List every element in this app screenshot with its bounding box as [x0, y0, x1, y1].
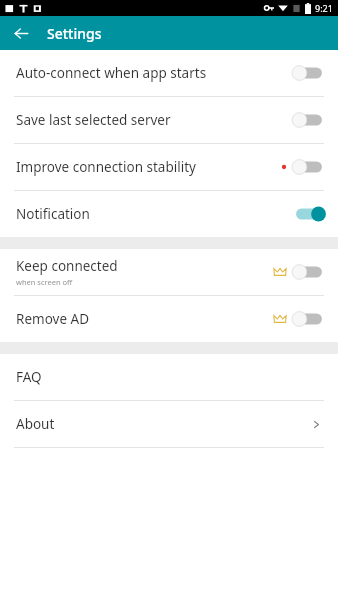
staticText: FAQ: [16, 368, 322, 386]
button[interactable]: Improve connection stability: [0, 144, 338, 190]
button[interactable]: Notification: [0, 191, 338, 237]
staticText: Notification: [16, 205, 90, 223]
button[interactable]: Save last selected server: [0, 97, 338, 143]
button[interactable]: Back: [8, 20, 34, 46]
button[interactable]: Auto-connect when app starts: [0, 50, 338, 96]
staticText: when screen off: [16, 277, 73, 287]
staticText: 9:21: [315, 2, 333, 14]
staticText: Save last selected server: [16, 111, 171, 129]
staticText: About: [16, 415, 311, 433]
button[interactable]: Keep connected: [0, 249, 338, 295]
staticText: Remove AD: [16, 310, 89, 328]
staticText: Keep connected: [16, 257, 118, 275]
button[interactable]: Remove AD: [0, 296, 338, 342]
staticText: Auto-connect when app starts: [16, 64, 207, 82]
staticText: Settings: [47, 24, 102, 43]
button[interactable]: FAQ: [0, 354, 338, 400]
staticText: Improve connection stability: [16, 158, 196, 176]
button[interactable]: About: [0, 401, 338, 447]
